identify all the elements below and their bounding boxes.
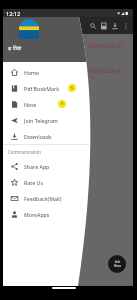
staticText: 9: [61, 101, 64, 107]
staticText: MoreApps: [24, 211, 50, 218]
button[interactable]: MoreApps: [3, 206, 92, 222]
button[interactable]: Share App: [3, 158, 92, 174]
button[interactable]: Downloads: [109, 20, 120, 31]
button[interactable]: Ask doubt: [108, 255, 126, 273]
staticText: क्ष विद्या: [8, 45, 22, 52]
button[interactable]: Join Telegram: [3, 112, 92, 128]
button[interactable]: Bookmarks: [98, 20, 109, 31]
staticText: NCERT(2023-24): [88, 43, 122, 49]
button[interactable]: Downloads: [3, 128, 92, 144]
staticText: Note: [24, 101, 37, 108]
button[interactable]: Feedback(Mail): [3, 190, 92, 206]
button[interactable]: Note: [3, 96, 92, 112]
staticText: Downloads: [24, 133, 52, 140]
staticText: Join Telegram: [24, 117, 58, 124]
staticText: Feedback(Mail): [24, 195, 62, 202]
staticText: Share App: [24, 163, 50, 170]
staticText: Rate Us: [24, 179, 43, 186]
button[interactable]: Rate Us: [3, 174, 92, 190]
staticText: 12:12: [6, 10, 21, 17]
staticText: 6: [71, 85, 74, 91]
button[interactable]: Home: [3, 64, 92, 80]
button[interactable]: More options: [120, 20, 131, 31]
staticText: NCERT(2023-24): [88, 68, 122, 74]
button[interactable]: Pdf BookMark: [3, 80, 92, 96]
staticText: Ask Now: [114, 260, 121, 268]
staticText: Pdf BookMark: [24, 85, 60, 92]
button[interactable]: Search: [87, 20, 98, 31]
staticText: Home: [24, 69, 39, 76]
staticText: Communication: [8, 149, 41, 155]
